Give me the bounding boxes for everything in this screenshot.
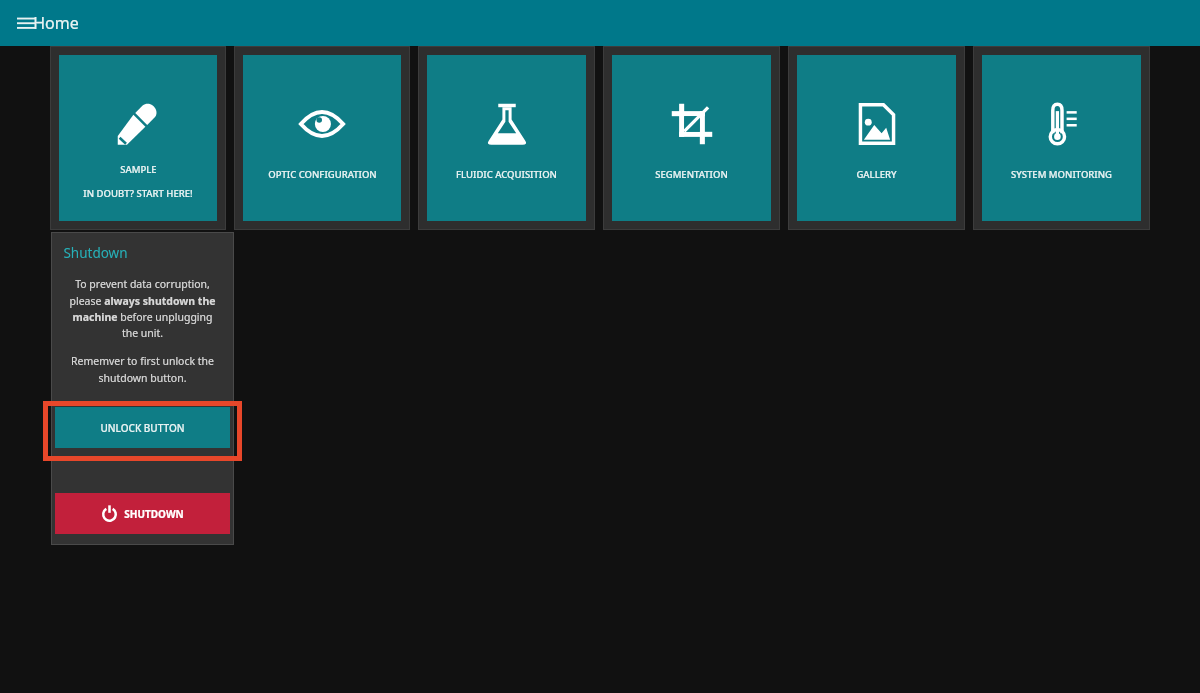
staticText: OPTIC CONFIGURATION	[268, 168, 377, 181]
button[interactable]: FLUIDIC ACQUISITION	[427, 55, 586, 221]
button[interactable]: UNLOCK BUTTON	[55, 407, 230, 448]
staticText: Rememver to first unlock the shutdown bu…	[65, 354, 220, 385]
staticText: Shutdown	[63, 244, 128, 262]
staticText: IN DOUBT? START HERE!	[83, 187, 193, 200]
button[interactable]: OPTIC CONFIGURATION	[243, 55, 401, 221]
button[interactable]: GALLERY	[797, 55, 956, 221]
staticText: SEGMENTATION	[655, 168, 728, 181]
staticText: Home	[33, 12, 79, 34]
staticText: SAMPLE	[120, 163, 157, 176]
staticText: UNLOCK BUTTON	[100, 421, 185, 435]
staticText: To prevent data corruption, please alway…	[65, 277, 220, 340]
button[interactable]: SYSTEM MONITORING	[982, 55, 1141, 221]
staticText: GALLERY	[856, 168, 897, 181]
button[interactable]: SEGMENTATION	[612, 55, 771, 221]
button[interactable]: SHUTDOWN	[55, 493, 230, 534]
staticText: SHUTDOWN	[124, 507, 184, 521]
staticText: FLUIDIC ACQUISITION	[456, 168, 557, 181]
button[interactable]: SAMPLE	[59, 55, 217, 221]
staticText: SYSTEM MONITORING	[1011, 168, 1112, 181]
button[interactable]: Open navigation menu	[8, 5, 44, 41]
